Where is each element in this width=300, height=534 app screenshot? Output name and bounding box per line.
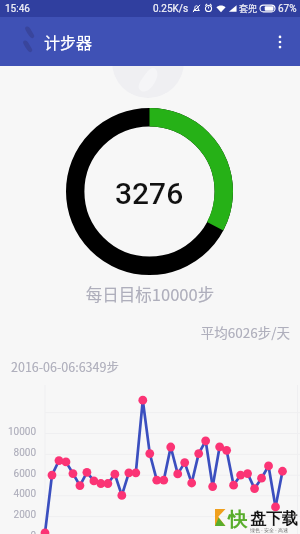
staticText: 4000: [0, 488, 36, 500]
staticText: 0.25K/s: [153, 3, 189, 15]
staticText: 0: [0, 530, 36, 534]
staticText: 盘下载: [250, 509, 298, 529]
staticText: 套兜: [239, 2, 258, 15]
staticText: 6000: [0, 468, 36, 480]
staticText: 3276: [115, 176, 184, 211]
staticText: 10000: [0, 426, 36, 438]
staticText: 绿色 · 安全 · 高速: [250, 527, 288, 534]
staticText: 15:46: [5, 3, 30, 15]
button[interactable]: More options: [260, 22, 300, 62]
staticText: 平均6026步/天: [0, 322, 290, 342]
staticText: 8000: [0, 447, 36, 459]
staticText: 67%: [278, 3, 297, 15]
staticText: 2000: [0, 509, 36, 521]
staticText: 计步器: [44, 30, 93, 53]
staticText: 每日目标10000步: [0, 282, 300, 306]
staticText: 2016-06-06:6349步: [11, 357, 119, 375]
staticText: 快: [228, 508, 247, 532]
